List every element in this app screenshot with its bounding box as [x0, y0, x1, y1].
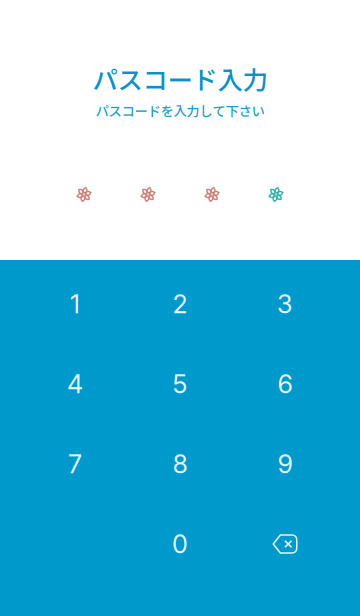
staticText: 9 [277, 449, 292, 479]
staticText: 3 [277, 289, 293, 319]
staticText: 4 [67, 369, 83, 399]
staticText: 6 [277, 369, 292, 399]
button[interactable]: 3 [232, 264, 337, 344]
button[interactable]: 0 [127, 504, 232, 584]
staticText: 0 [172, 529, 188, 559]
staticText: パスコードを入力して下さい [95, 101, 264, 120]
button[interactable]: 5 [127, 344, 232, 424]
button[interactable]: 1 [22, 264, 127, 344]
staticText: 5 [172, 369, 187, 399]
button[interactable]: 6 [232, 344, 337, 424]
staticText: 7 [68, 449, 82, 479]
button[interactable]: 8 [127, 424, 232, 504]
staticText: パスコード入力 [92, 60, 267, 97]
staticText: 2 [172, 289, 187, 319]
staticText: 1 [70, 289, 80, 319]
button[interactable]: 7 [22, 424, 127, 504]
staticText: 8 [172, 449, 187, 479]
button[interactable]: Delete [232, 504, 337, 584]
button[interactable]: 4 [22, 344, 127, 424]
button[interactable]: 9 [232, 424, 337, 504]
button[interactable]: 2 [127, 264, 232, 344]
